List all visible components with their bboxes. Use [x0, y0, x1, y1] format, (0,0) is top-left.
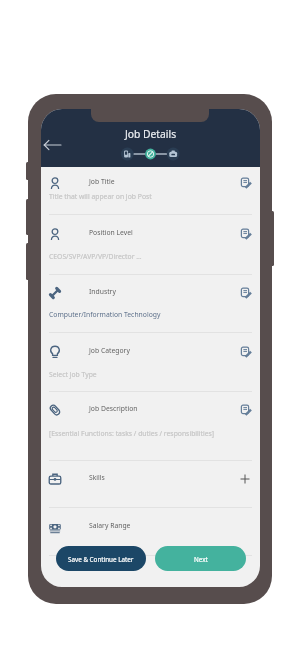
- button[interactable]: Job Title: [41, 167, 260, 215]
- button[interactable]: Edit: [241, 347, 251, 357]
- staticText: Next: [194, 555, 208, 564]
- button[interactable]: Add: [240, 474, 250, 484]
- staticText: Computer/Information Technology: [49, 310, 161, 319]
- staticText: Select Job Type: [49, 370, 97, 379]
- staticText: CEOS/SVP/AVP/VP/Director ...: [49, 252, 142, 261]
- staticText: Job Description: [89, 404, 138, 413]
- staticText: Title that will appear on Job Post: [49, 192, 152, 201]
- button[interactable]: Back: [42, 135, 62, 155]
- button[interactable]: Edit: [241, 229, 251, 239]
- button[interactable]: Edit: [241, 288, 251, 298]
- button[interactable]: Edit: [241, 405, 251, 415]
- staticText: Job Category: [89, 346, 130, 355]
- button[interactable]: Edit: [241, 178, 251, 188]
- staticText: Job Title: [89, 177, 115, 186]
- button[interactable]: Job Description: [41, 392, 260, 461]
- button[interactable]: Industry: [41, 275, 260, 333]
- staticText: Industry: [89, 287, 116, 296]
- staticText: Job Details: [125, 127, 177, 141]
- staticText: Position Level: [89, 228, 133, 237]
- button[interactable]: Save & Continue Later: [56, 546, 146, 571]
- button[interactable]: Skills: [41, 461, 260, 508]
- button[interactable]: Salary Range: [41, 508, 260, 556]
- button[interactable]: Job Category: [41, 333, 260, 392]
- staticText: Skills: [89, 473, 105, 482]
- button[interactable]: Next: [155, 546, 246, 571]
- staticText: [Essential Functions: tasks / duties / r…: [49, 429, 215, 438]
- staticText: Salary Range: [89, 521, 131, 530]
- button[interactable]: Position Level: [41, 215, 260, 275]
- staticText: Save & Continue Later: [68, 555, 134, 564]
